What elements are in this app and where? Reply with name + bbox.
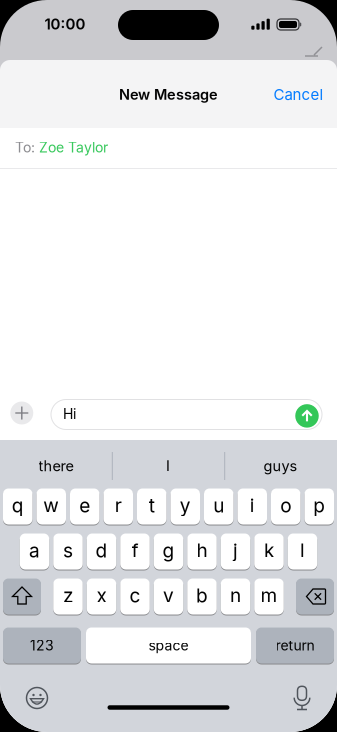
staticText: v — [163, 584, 174, 607]
staticText: n — [230, 584, 241, 607]
staticText: d — [95, 539, 107, 562]
staticText: Hi — [63, 405, 76, 422]
button[interactable]: Add attachment — [10, 401, 33, 424]
staticText: a — [29, 539, 40, 562]
staticText: Zoe Taylor — [39, 139, 108, 156]
staticText: there — [38, 457, 73, 475]
button[interactable]: f — [120, 533, 150, 570]
button[interactable]: x — [87, 578, 116, 615]
button[interactable]: c — [120, 578, 150, 615]
staticText: To: — [15, 139, 35, 156]
button[interactable]: I — [112, 443, 224, 488]
button[interactable]: a — [20, 533, 49, 570]
button[interactable]: Message text field — [51, 399, 322, 429]
button[interactable]: b — [187, 578, 217, 615]
button[interactable]: Cancel — [268, 79, 328, 109]
staticText: return — [275, 637, 314, 654]
button[interactable]: u — [204, 488, 233, 525]
staticText: g — [162, 539, 174, 562]
button[interactable]: g — [154, 533, 183, 570]
staticText: c — [129, 584, 140, 607]
button[interactable]: r — [103, 488, 133, 525]
button[interactable]: space — [86, 627, 251, 664]
button[interactable]: j — [221, 533, 250, 570]
button[interactable]: q — [3, 488, 32, 525]
staticText: z — [63, 584, 73, 607]
staticText: e — [79, 494, 90, 517]
button[interactable]: there — [0, 443, 112, 488]
staticText: I — [166, 457, 170, 475]
staticText: 10:00 — [44, 15, 85, 33]
staticText: p — [313, 494, 325, 517]
button[interactable]: p — [304, 488, 334, 525]
button[interactable]: h — [187, 533, 217, 570]
staticText: u — [213, 494, 224, 517]
button[interactable]: v — [154, 578, 183, 615]
staticText: j — [233, 539, 238, 562]
button[interactable]: return — [256, 627, 334, 664]
staticText: space — [148, 637, 188, 654]
button[interactable]: i — [237, 488, 267, 525]
button[interactable]: Delete — [296, 578, 334, 615]
staticText: h — [196, 539, 207, 562]
button[interactable]: y — [170, 488, 200, 525]
button[interactable]: s — [53, 533, 83, 570]
button[interactable]: Emoji — [25, 686, 48, 709]
staticText: r — [115, 494, 122, 517]
staticText: l — [300, 539, 305, 562]
button[interactable]: Send — [295, 404, 319, 428]
staticText: New Message — [119, 86, 218, 103]
button[interactable]: To: Zoe Taylor — [0, 127, 337, 167]
button[interactable]: 123 — [3, 627, 81, 664]
button[interactable]: w — [36, 488, 66, 525]
staticText: guys — [263, 457, 297, 475]
button[interactable]: z — [53, 578, 83, 615]
button[interactable]: guys — [224, 443, 337, 488]
staticText: x — [96, 584, 106, 607]
staticText: b — [196, 584, 208, 607]
button[interactable]: m — [254, 578, 284, 615]
staticText: 123 — [30, 637, 54, 654]
staticText: m — [260, 584, 277, 607]
staticText: t — [149, 494, 155, 517]
button[interactable]: e — [70, 488, 99, 525]
button[interactable]: d — [87, 533, 116, 570]
button[interactable]: Shift — [3, 578, 41, 615]
button[interactable]: Dictation — [291, 685, 313, 710]
button[interactable]: o — [271, 488, 300, 525]
button[interactable]: t — [137, 488, 166, 525]
button[interactable]: l — [288, 533, 317, 570]
staticText: Cancel — [273, 85, 323, 103]
staticText: o — [280, 494, 291, 517]
staticText: w — [43, 494, 59, 517]
button[interactable]: k — [254, 533, 284, 570]
staticText: i — [250, 494, 255, 517]
staticText: y — [180, 494, 191, 517]
staticText: k — [264, 539, 274, 562]
staticText: s — [63, 539, 73, 562]
staticText: f — [131, 539, 138, 562]
button[interactable]: n — [221, 578, 250, 615]
staticText: q — [12, 494, 24, 517]
